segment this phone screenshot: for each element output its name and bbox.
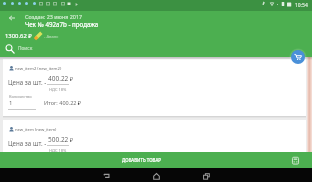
staticText: Поиск — [18, 45, 33, 52]
button[interactable]: new_item (new_item) — [3, 120, 306, 152]
staticText: 1300.62 ₽ — [5, 32, 32, 40]
staticText: 1 — [9, 99, 13, 107]
staticText: Итог: 400.22 ₽ — [44, 99, 82, 106]
staticText: ДОБАВИТЬ ТОВАР — [122, 157, 161, 163]
staticText: new_item2 (new_item2) — [15, 66, 62, 72]
staticText: - Аванс — [44, 34, 59, 40]
staticText: НДС 18% — [49, 148, 67, 153]
staticText: 10:54 — [295, 2, 308, 9]
staticText: Создан: 23 июня 2017 — [25, 13, 83, 20]
button[interactable]: new_item2 (new_item2) — [3, 59, 306, 116]
staticText: new_item (new_item) — [15, 127, 57, 133]
staticText: 400.22 — [48, 74, 69, 83]
staticText: ₽ — [70, 75, 74, 82]
staticText: Цена за шт. - — [8, 139, 47, 147]
button[interactable]: Shopping cart — [291, 50, 305, 64]
button[interactable]: Home — [152, 172, 160, 180]
button[interactable]: Calculator — [290, 155, 301, 166]
staticText: Цена за шт. - — [8, 78, 47, 86]
staticText: Чек № 492a7b - продажа — [25, 20, 99, 28]
staticText: Количество — [9, 94, 32, 99]
button[interactable]: Recent apps — [202, 172, 210, 180]
button[interactable]: Back — [5, 11, 18, 24]
staticText: ₽ — [70, 136, 74, 143]
button[interactable]: Back — [102, 172, 110, 180]
staticText: 500.22 — [48, 135, 69, 144]
button[interactable]: ДОБАВИТЬ ТОВАР — [0, 152, 312, 168]
staticText: НДС 18% — [49, 87, 67, 92]
